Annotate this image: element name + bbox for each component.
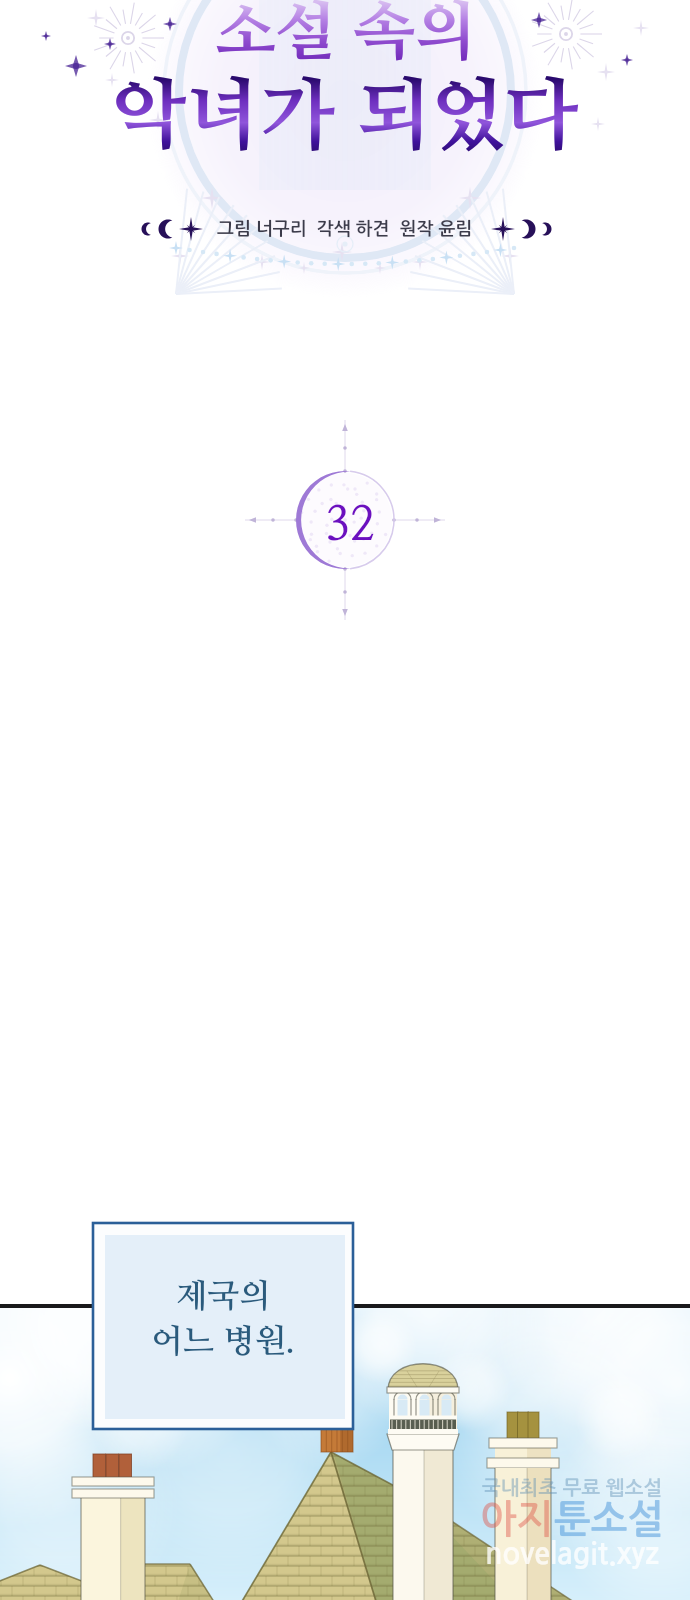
staticText: 아지 [480, 1500, 554, 1539]
staticText: 툰소설 [554, 1500, 664, 1539]
staticText: 제국의 어느 병원. [151, 1281, 295, 1359]
staticText: 국내최초 무료 웹소설 [482, 1478, 663, 1498]
staticText: 32 [325, 503, 375, 549]
staticText: 소설 속의 [0, 2, 690, 66]
button[interactable]: 제국의 어느 병원. [93, 1223, 353, 1429]
staticText: novelagit.xyz [485, 1540, 660, 1569]
staticText: 그림 너구리 각색 하견 원작 윤림 [217, 220, 473, 238]
staticText: 악녀가 되었다 [0, 79, 690, 157]
